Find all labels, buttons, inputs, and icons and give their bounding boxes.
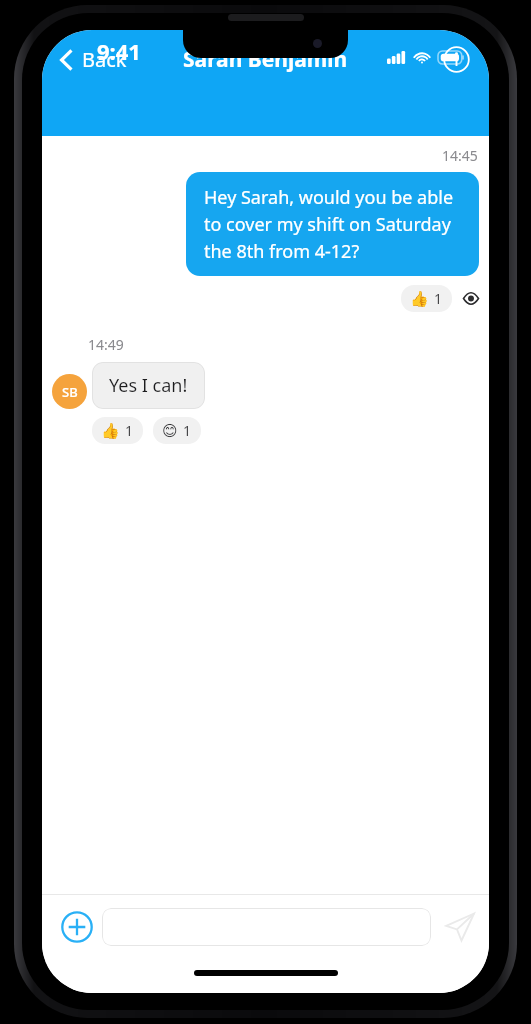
button[interactable]: 👍 [92,417,143,444]
staticText: 😊 [162,422,178,439]
button[interactable] [102,908,431,946]
button[interactable]: Info [435,38,477,80]
staticText: Hey Sarah, would you be able to cover my… [204,185,461,263]
button[interactable]: Add attachment [56,906,98,948]
other: Seen [463,293,479,304]
button[interactable]: Send [437,904,483,950]
button[interactable]: Back [54,42,133,77]
button[interactable]: 😊 [153,417,201,444]
staticText: 👍 [101,422,120,440]
staticText: 1 [183,421,192,440]
staticText: 14:45 [442,146,478,165]
staticText: 1 [125,421,134,440]
staticText: 1 [434,289,443,308]
staticText: 👍 [410,290,429,308]
staticText: Yes I can! [109,373,188,398]
staticText: 9:41 [97,36,141,66]
button[interactable]: SB [52,374,87,409]
staticText: Back [82,46,127,73]
button[interactable]: Hey Sarah, would you be able to cover my… [186,172,479,276]
staticText: Sarah Benjamin [183,45,348,74]
button[interactable]: Yes I can! [92,362,205,409]
staticText: 14:49 [88,335,124,354]
button[interactable]: 👍 [401,285,452,312]
staticText: SB [62,383,78,401]
